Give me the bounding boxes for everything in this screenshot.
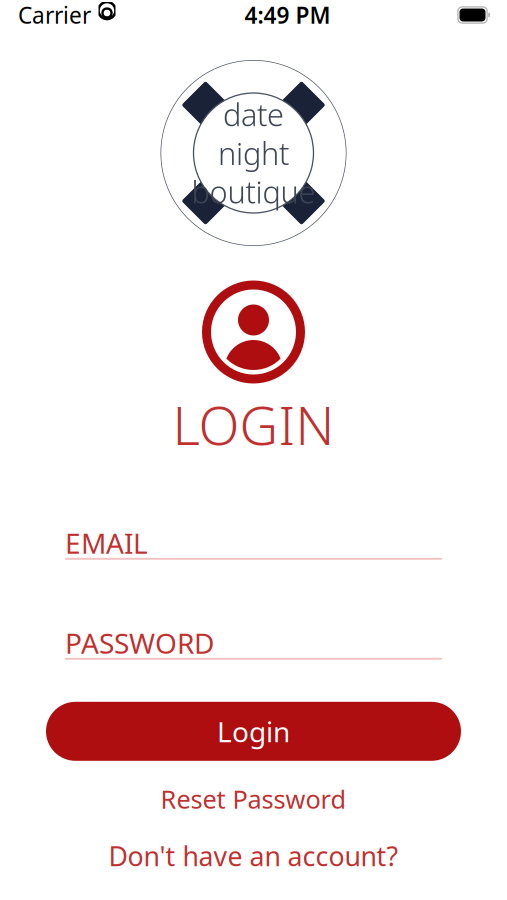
staticText: PASSWORD bbox=[65, 624, 214, 661]
staticText: boutique bbox=[191, 171, 315, 212]
staticText: night bbox=[218, 133, 289, 173]
staticText: LOGIN bbox=[172, 389, 334, 460]
staticText: 4:49 PM bbox=[244, 0, 330, 30]
button[interactable]: Login bbox=[46, 702, 461, 761]
staticText: Carrier bbox=[18, 0, 91, 30]
staticText: EMAIL bbox=[65, 524, 148, 561]
staticText: Reset Password bbox=[160, 782, 346, 816]
button[interactable]: Don't have an account? bbox=[46, 842, 461, 870]
staticText: Don't have an account? bbox=[108, 838, 398, 873]
staticText: date bbox=[223, 94, 284, 135]
button[interactable]: Reset Password bbox=[46, 786, 461, 812]
staticText: Login bbox=[217, 713, 290, 750]
